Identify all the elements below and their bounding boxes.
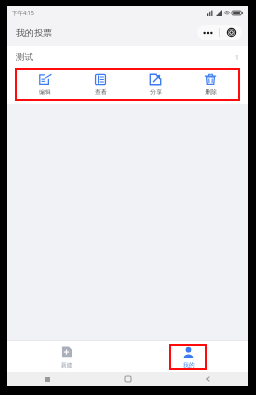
button[interactable]: 分享: [128, 68, 183, 101]
button[interactable]: 查看: [73, 68, 128, 101]
button[interactable]: 测试: [7, 46, 248, 68]
button[interactable]: 删除: [183, 68, 238, 101]
staticText: 编辑: [39, 88, 51, 96]
staticText: 分享: [150, 88, 162, 96]
staticText: 新建: [61, 361, 73, 368]
button[interactable]: 我的: [169, 344, 207, 370]
staticText: 我的投票: [16, 27, 52, 38]
button[interactable]: Recents: [7, 372, 88, 386]
staticText: 测试: [16, 52, 33, 63]
staticText: 我的: [183, 361, 195, 368]
button[interactable]: 编辑: [17, 68, 73, 101]
staticText: 删除: [205, 88, 217, 96]
staticText: 下午4:15: [12, 9, 34, 17]
button[interactable]: Home: [88, 372, 168, 386]
button[interactable]: More options: [197, 25, 219, 40]
button[interactable]: Back: [168, 372, 248, 386]
button[interactable]: 新建: [7, 341, 127, 372]
staticText: 1: [235, 53, 239, 62]
staticText: 查看: [95, 88, 107, 96]
button[interactable]: Target: [220, 25, 242, 40]
